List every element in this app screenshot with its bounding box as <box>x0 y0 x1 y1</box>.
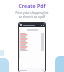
staticText: Create Pdf <box>0 2 64 9</box>
other: Bottom bar <box>19 68 45 72</box>
staticText: Print your shopping list <box>0 11 64 15</box>
other: App bar <box>19 23 45 27</box>
button[interactable]: App bar <box>18 22 46 72</box>
staticText: or share it as a pdf <box>0 15 64 19</box>
